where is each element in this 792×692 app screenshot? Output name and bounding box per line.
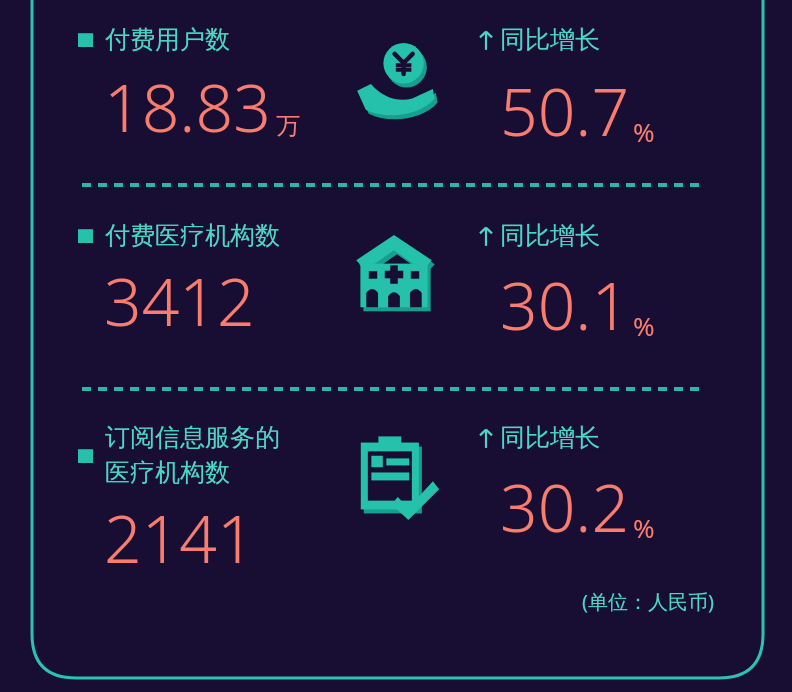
other: Paid users — [352, 34, 438, 120]
staticText: 30.1 — [500, 259, 630, 349]
staticText: 医疗机构数 — [105, 457, 230, 488]
other: Medical institutions — [352, 230, 436, 314]
staticText: 同比增长 — [500, 24, 600, 55]
staticText: 2141 — [104, 492, 255, 582]
staticText: 付费用户数 — [105, 24, 230, 55]
button[interactable]: 付费医疗机构数 — [0, 192, 792, 382]
staticText: 50.7 — [500, 65, 630, 155]
staticText: (单位：人民币) — [582, 588, 714, 615]
staticText: % — [633, 510, 655, 545]
staticText: 同比增长 — [500, 220, 600, 251]
staticText: 付费医疗机构数 — [105, 220, 280, 251]
staticText: 订阅信息服务的 — [105, 422, 280, 453]
staticText: 30.2 — [500, 461, 630, 551]
staticText: 3412 — [104, 255, 255, 345]
staticText: 万 — [276, 111, 300, 141]
staticText: 同比增长 — [500, 422, 600, 453]
staticText: % — [633, 114, 655, 149]
button[interactable]: 订阅信息服务的 — [0, 396, 792, 588]
button[interactable]: 付费用户数 — [0, 16, 792, 178]
staticText: 18.83 — [104, 61, 271, 151]
staticText: % — [633, 308, 655, 343]
other: Subscribed institutions — [352, 432, 440, 520]
